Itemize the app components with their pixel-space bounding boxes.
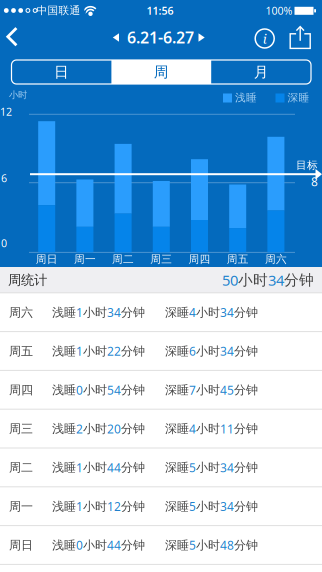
staticText: 月 xyxy=(254,63,269,81)
staticText: i xyxy=(263,29,267,48)
staticText: 分钟 xyxy=(234,344,258,358)
staticText: 小时 xyxy=(83,421,107,436)
staticText: 100% xyxy=(265,3,292,18)
staticText: 小时 xyxy=(83,538,107,552)
button[interactable] xyxy=(288,25,314,51)
staticText: 1 xyxy=(76,304,83,320)
staticText: 34 xyxy=(220,343,234,359)
staticText: 周五 xyxy=(227,253,249,266)
staticText: 0 xyxy=(76,537,83,553)
staticText: 周 xyxy=(154,63,169,81)
button[interactable]: 月 xyxy=(211,60,311,84)
staticText: 深睡 xyxy=(165,421,189,436)
staticText: 周日 xyxy=(36,253,58,266)
button[interactable] xyxy=(109,29,123,45)
staticText: 分钟 xyxy=(234,421,258,436)
staticText: 日 xyxy=(54,63,69,81)
staticText: 4 xyxy=(189,304,196,320)
staticText: 分钟 xyxy=(234,383,258,397)
staticText: 浅睡 xyxy=(235,91,257,104)
staticText: 小时 xyxy=(196,344,220,358)
staticText: 深睡 xyxy=(165,538,189,552)
staticText: 小时 xyxy=(83,305,107,320)
staticText: 20 xyxy=(107,421,121,437)
staticText: 小时 xyxy=(196,305,220,320)
button[interactable] xyxy=(195,29,209,45)
staticText: 8 xyxy=(311,173,318,189)
staticText: 分钟 xyxy=(121,460,145,475)
staticText: 12 xyxy=(107,498,121,514)
button[interactable] xyxy=(2,22,22,52)
staticText: 44 xyxy=(107,537,121,553)
staticText: 周统计 xyxy=(8,272,47,288)
staticText: 周二 xyxy=(112,253,134,266)
staticText: 小时 xyxy=(83,344,107,358)
staticText: 深睡 xyxy=(165,499,189,514)
staticText: 1 xyxy=(76,498,83,514)
staticText: 45 xyxy=(220,382,234,398)
staticText: 分钟 xyxy=(121,344,145,358)
staticText: 小时 xyxy=(238,271,268,289)
staticText: 2 xyxy=(76,421,83,437)
staticText: 34 xyxy=(220,498,234,514)
staticText: 7 xyxy=(189,382,196,398)
staticText: 小时 xyxy=(83,460,107,475)
staticText: 小时 xyxy=(9,89,27,101)
staticText: 周二 xyxy=(9,460,33,475)
staticText: 周日 xyxy=(9,538,33,552)
staticText: 中国联通 xyxy=(36,4,80,17)
staticText: 深睡 xyxy=(165,460,189,475)
staticText: 分钟 xyxy=(234,460,258,475)
staticText: 54 xyxy=(107,382,121,398)
staticText: 分钟 xyxy=(121,538,145,552)
staticText: 目标 xyxy=(296,159,318,172)
staticText: 5 xyxy=(189,460,196,475)
staticText: 浅睡 xyxy=(52,305,76,320)
staticText: 分钟 xyxy=(121,383,145,397)
staticText: 小时 xyxy=(196,421,220,436)
staticText: 4 xyxy=(189,421,196,437)
button[interactable]: 日 xyxy=(11,60,111,84)
staticText: 周一 xyxy=(9,499,33,514)
staticText: 周五 xyxy=(9,344,33,358)
staticText: 11:56 xyxy=(146,3,173,18)
staticText: 分钟 xyxy=(234,305,258,320)
staticText: 浅睡 xyxy=(52,421,76,436)
staticText: 周三 xyxy=(150,253,172,266)
staticText: 分钟 xyxy=(234,499,258,514)
staticText: 浅睡 xyxy=(52,344,76,358)
staticText: 11 xyxy=(220,421,234,437)
staticText: 34 xyxy=(220,460,234,475)
staticText: 34 xyxy=(107,304,121,320)
staticText: 浅睡 xyxy=(52,383,76,397)
staticText: 22 xyxy=(107,343,121,359)
button[interactable]: 周 xyxy=(111,60,211,84)
staticText: 50 xyxy=(222,270,238,290)
button[interactable]: i xyxy=(253,26,277,50)
staticText: 分钟 xyxy=(234,538,258,552)
staticText: 34 xyxy=(220,304,234,320)
staticText: 5 xyxy=(189,537,196,553)
staticText: 小时 xyxy=(196,538,220,552)
staticText: 深睡 xyxy=(287,91,309,104)
staticText: 深睡 xyxy=(165,383,189,397)
staticText: 深睡 xyxy=(165,305,189,320)
staticText: 小时 xyxy=(83,383,107,397)
staticText: 6 xyxy=(189,343,196,359)
staticText: 小时 xyxy=(196,383,220,397)
staticText: 分钟 xyxy=(121,421,145,436)
staticText: 0 xyxy=(76,382,83,398)
staticText: 6 xyxy=(1,171,7,185)
staticText: 周六 xyxy=(9,305,33,320)
staticText: 浅睡 xyxy=(52,499,76,514)
staticText: 48 xyxy=(220,537,234,553)
staticText: 0 xyxy=(1,236,7,250)
staticText: 周三 xyxy=(9,421,33,436)
staticText: 1 xyxy=(76,343,83,359)
staticText: 分钟 xyxy=(121,305,145,320)
staticText: 34 xyxy=(268,270,284,290)
staticText: 6.21-6.27 xyxy=(127,27,194,48)
staticText: 小时 xyxy=(83,499,107,514)
staticText: 周四 xyxy=(9,383,33,397)
staticText: 12 xyxy=(0,104,12,119)
